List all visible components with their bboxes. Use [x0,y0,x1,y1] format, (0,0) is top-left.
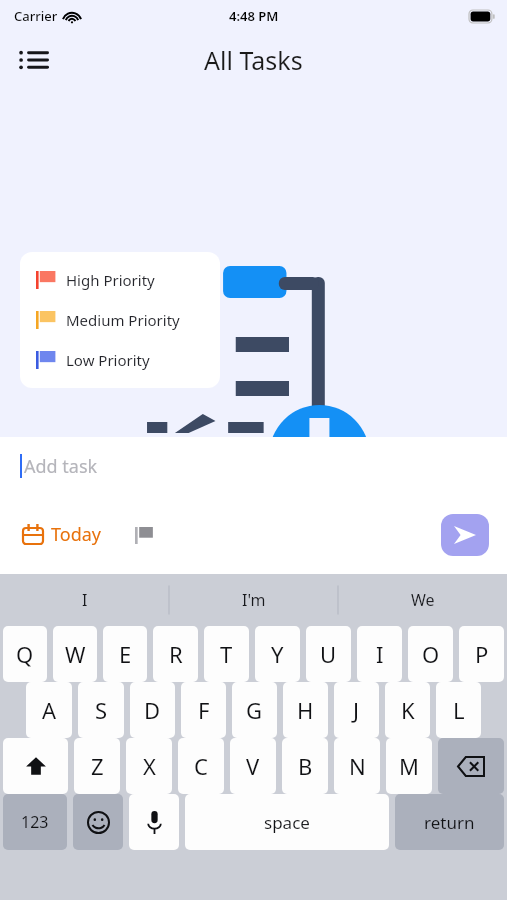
staticText: High Priority [66,270,155,290]
button[interactable]: D [130,682,175,738]
staticText: I [376,639,384,669]
staticText: X [143,751,156,781]
staticText: T [220,639,233,669]
button[interactable]: 123 [3,794,67,850]
button[interactable]: N [334,738,380,794]
staticText: We [411,589,435,611]
button[interactable]: Dictation [129,794,179,850]
staticText: C [194,751,208,781]
staticText: Today [51,522,101,547]
button[interactable]: F [181,682,226,738]
staticText: F [198,695,210,725]
button[interactable]: J [334,682,379,738]
button[interactable]: Y [255,626,300,682]
staticText: space [264,811,310,834]
staticText: Carrier [14,7,58,25]
staticText: R [169,639,183,669]
button[interactable]: Shift [3,738,68,794]
staticText: 123 [21,811,49,833]
staticText: A [42,695,57,725]
staticText: Add task [24,454,98,479]
button[interactable]: G [232,682,277,738]
staticText: E [119,639,132,669]
button[interactable]: R [153,626,198,682]
staticText: All Tasks [204,43,303,77]
staticText: Y [271,639,284,669]
staticText: return [424,811,475,834]
staticText: L [453,695,465,725]
staticText: M [399,751,419,781]
button[interactable]: space [185,794,389,850]
button[interactable]: U [306,626,351,682]
button[interactable]: I'm [169,574,338,626]
staticText: N [349,751,366,781]
staticText: G [246,695,263,725]
staticText: Q [16,639,34,669]
staticText: P [475,639,489,669]
staticText: I [82,589,88,611]
button[interactable]: I [357,626,402,682]
staticText: Z [91,751,104,781]
staticText: H [297,695,314,725]
button[interactable]: A [26,682,72,738]
button[interactable]: Send [441,514,489,556]
button[interactable]: O [408,626,453,682]
staticText: D [144,695,161,725]
button[interactable]: B [282,738,328,794]
staticText: W [65,639,86,669]
button[interactable]: H [283,682,328,738]
staticText: S [95,695,108,725]
staticText: K [401,695,415,725]
button[interactable]: X [126,738,172,794]
button[interactable]: Q [3,626,47,682]
button[interactable]: T [204,626,249,682]
button[interactable]: Delete [438,738,504,794]
staticText: Low Priority [66,350,150,370]
button[interactable]: P [459,626,504,682]
button[interactable]: S [78,682,124,738]
staticText: O [422,639,440,669]
button[interactable]: E [103,626,147,682]
button[interactable]: C [178,738,224,794]
staticText: 4:48 PM [229,7,279,25]
staticText: I'm [242,589,266,611]
staticText: V [246,751,260,781]
button[interactable]: Z [74,738,120,794]
button[interactable]: Emoji [73,794,123,850]
button[interactable]: K [385,682,430,738]
button[interactable]: W [53,626,97,682]
staticText: J [353,695,360,725]
button[interactable]: M [386,738,432,794]
staticText: B [298,751,313,781]
button[interactable]: V [230,738,276,794]
button[interactable]: Today [18,518,105,551]
staticText: Medium Priority [66,310,180,330]
staticText: U [320,639,337,669]
button[interactable]: We [338,574,507,626]
button[interactable]: return [395,794,504,850]
button[interactable]: L [436,682,481,738]
button[interactable]: Menu [8,34,60,86]
button[interactable]: Set priority flag [127,518,161,552]
button[interactable]: I [0,574,169,626]
